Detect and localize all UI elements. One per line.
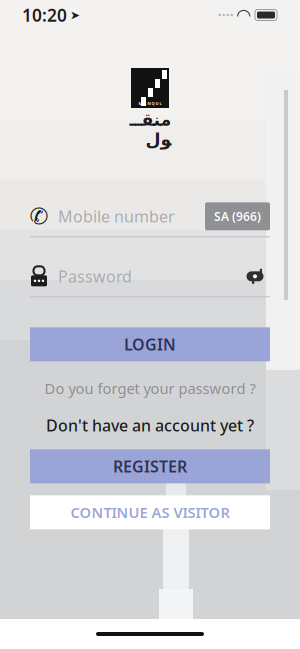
staticText: Don't have an account yet ? [46,415,254,436]
staticText: ◠ [237,5,250,25]
staticText: SA (966) [214,208,261,224]
button[interactable]: REGISTER [30,449,270,483]
button[interactable]: Show password [240,262,270,290]
staticText: ✆ [29,203,48,229]
staticText: Do you forget your password ? [44,379,255,398]
staticText: Mobile number [58,206,175,227]
staticText: M A N Q U L [138,101,161,106]
button[interactable]: Do you forget your password ? [30,373,270,403]
staticText: 10:20 [22,3,67,26]
staticText: REGISTER [113,456,187,477]
button[interactable]: LOGIN [30,327,270,361]
staticText: Password [58,266,132,287]
staticText: CONTINUE AS VISITOR [70,503,229,522]
staticText: منقــول [129,110,171,149]
staticText: LOGIN [124,334,176,355]
button[interactable]: CONTINUE AS VISITOR [30,495,270,529]
staticText: ➤ [70,8,80,22]
